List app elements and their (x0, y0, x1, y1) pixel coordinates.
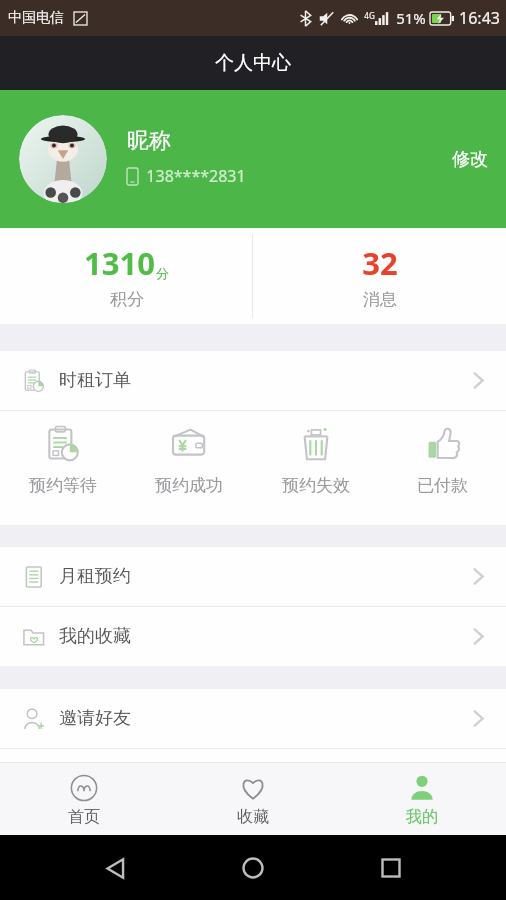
staticText: 首页 (68, 807, 100, 827)
staticText: 分 (156, 265, 169, 281)
button[interactable]: 我的收藏 (0, 607, 506, 666)
staticText: 昵称 (127, 127, 171, 155)
staticText: 消息 (363, 289, 397, 310)
staticText: 我的 (406, 807, 438, 827)
staticText: 中国电信 (8, 9, 64, 27)
staticText: 预约等待 (29, 475, 97, 496)
button[interactable]: 预约等待 (0, 411, 126, 525)
button[interactable]: 预约成功 (126, 411, 252, 525)
staticText: 1310 (84, 242, 155, 284)
staticText: 积分 (110, 289, 144, 310)
staticText: 收藏 (237, 807, 269, 827)
staticText: 138****2831 (146, 165, 246, 187)
button[interactable]: 月租预约 (0, 547, 506, 606)
staticText: 我的收藏 (59, 625, 131, 648)
staticText: 预约成功 (155, 475, 223, 496)
staticText: 16:43 (459, 7, 500, 29)
button[interactable]: 收藏 (168, 763, 337, 835)
staticText: 个人中心 (215, 51, 291, 75)
staticText: 预约失效 (282, 475, 350, 496)
button[interactable]: 预约失效 (252, 411, 379, 525)
staticText: 51% (396, 8, 426, 28)
button[interactable]: 首页 (0, 763, 168, 835)
staticText: 32 (362, 242, 398, 284)
staticText: 4G (364, 10, 375, 21)
button[interactable]: 32 (253, 228, 506, 324)
staticText: 已付款 (417, 475, 468, 496)
button[interactable]: 1310 (0, 228, 252, 324)
button[interactable]: Avatar (19, 115, 107, 203)
staticText: 邀请好友 (59, 707, 131, 730)
button[interactable]: 时租订单 (0, 351, 506, 410)
button[interactable]: Back (92, 845, 138, 891)
button[interactable]: 修改 (434, 138, 506, 181)
button[interactable]: 邀请好友 (0, 689, 506, 748)
button[interactable]: 我的 (337, 763, 506, 835)
button[interactable]: Recents (368, 845, 414, 891)
staticText: 月租预约 (59, 565, 131, 588)
staticText: 修改 (452, 148, 488, 171)
button[interactable]: 已付款 (379, 411, 506, 525)
button[interactable]: Home (230, 845, 276, 891)
staticText: 时租订单 (59, 369, 131, 392)
